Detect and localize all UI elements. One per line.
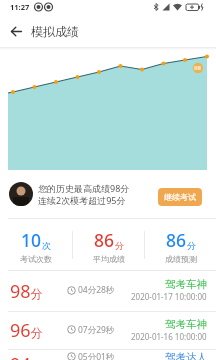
staticText: 86: [94, 228, 115, 252]
staticText: 模拟成绩: [31, 24, 79, 39]
button[interactable]: [8, 23, 24, 39]
staticText: 连续2次模考超过95分: [38, 194, 126, 206]
button[interactable]: 96分: [0, 312, 216, 349]
button[interactable]: 86: [73, 219, 144, 264]
staticText: 94分: [10, 352, 43, 360]
button[interactable]: 98分: [0, 271, 216, 311]
staticText: 11:27: [10, 2, 30, 12]
staticText: 次: [42, 240, 51, 251]
staticText: 驾考车神: [165, 278, 207, 291]
button[interactable]: 86: [145, 219, 216, 264]
button[interactable]: 继续考试: [158, 188, 202, 206]
staticText: 分: [115, 240, 124, 251]
staticText: 平均成绩: [93, 254, 125, 264]
staticText: 86: [166, 228, 187, 252]
staticText: 您的历史最高成绩98分: [38, 182, 130, 194]
staticText: 98: [194, 64, 201, 72]
staticText: 98分: [10, 279, 43, 304]
staticText: 10: [21, 228, 42, 252]
staticText: 2020-01-16 10:00:00: [131, 331, 207, 342]
staticText: 成绩预测: [165, 254, 197, 264]
button[interactable]: 10: [0, 219, 72, 264]
staticText: 2020-01-17 10:00:00: [131, 291, 207, 302]
staticText: 04分28秒: [78, 284, 115, 296]
staticText: 07分29秒: [78, 324, 115, 336]
staticText: 考试次数: [20, 254, 52, 264]
button[interactable]: 94分: [0, 352, 216, 360]
staticText: 96分: [10, 318, 43, 343]
staticText: 分: [187, 240, 196, 251]
staticText: 驾考车神: [165, 318, 207, 331]
staticText: 05分01秒: [78, 351, 115, 360]
staticText: 继续考试: [164, 192, 196, 202]
staticText: 驾考达人: [165, 351, 207, 360]
